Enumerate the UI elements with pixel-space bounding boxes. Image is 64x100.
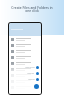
staticText: Create Files and Folders in one click [11,5,53,13]
button[interactable] [9,54,41,60]
button[interactable] [9,36,41,42]
button[interactable] [9,72,41,78]
button[interactable]: New folder [25,66,39,72]
staticText: New folder [25,66,35,69]
button[interactable]: New file [27,72,39,78]
button[interactable]: Add [34,84,39,89]
button[interactable] [9,66,41,72]
button[interactable] [9,78,41,84]
button[interactable] [9,60,41,66]
button[interactable]: Upload [28,78,39,84]
button[interactable] [9,84,41,90]
staticText: New file [27,72,35,75]
button[interactable] [9,42,41,48]
button[interactable] [9,48,41,54]
staticText: Upload [28,78,35,81]
